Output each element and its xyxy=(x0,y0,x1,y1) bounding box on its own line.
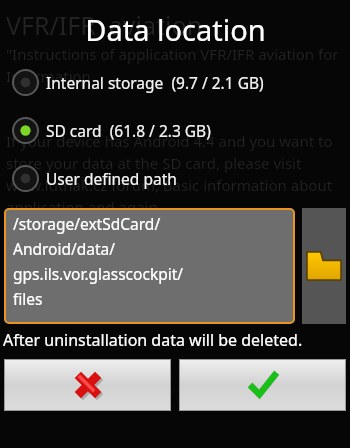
staticText: /storage/extSdCard/ Android/data/ gps.il… xyxy=(13,213,184,309)
staticText: After uninstallation data will be delete… xyxy=(3,329,303,351)
button[interactable]: Cancel xyxy=(4,359,171,411)
staticText: VFR/IFR aviation xyxy=(6,8,203,42)
button[interactable]: /storage/extSdCard/ Android/data/ gps.il… xyxy=(4,208,295,324)
staticText: Data location xyxy=(85,10,266,49)
button[interactable]: User defined path xyxy=(0,154,350,202)
staticText: Internal storage (9.7 / 2.1 GB) xyxy=(46,72,264,93)
staticText: User defined path xyxy=(46,168,177,189)
staticText: SD card (61.8 / 2.3 GB) xyxy=(46,120,211,141)
staticText: "Instructions of application VFR/IFR avi… xyxy=(6,44,344,87)
button[interactable]: Internal storage (9.7 / 2.1 GB) xyxy=(0,58,350,106)
button[interactable]: Browse folder xyxy=(302,208,346,324)
staticText: If your device has Android 4.4 and you w… xyxy=(6,131,344,218)
button[interactable]: SD card (61.8 / 2.3 GB) xyxy=(0,106,350,154)
button[interactable]: Confirm xyxy=(179,359,346,411)
